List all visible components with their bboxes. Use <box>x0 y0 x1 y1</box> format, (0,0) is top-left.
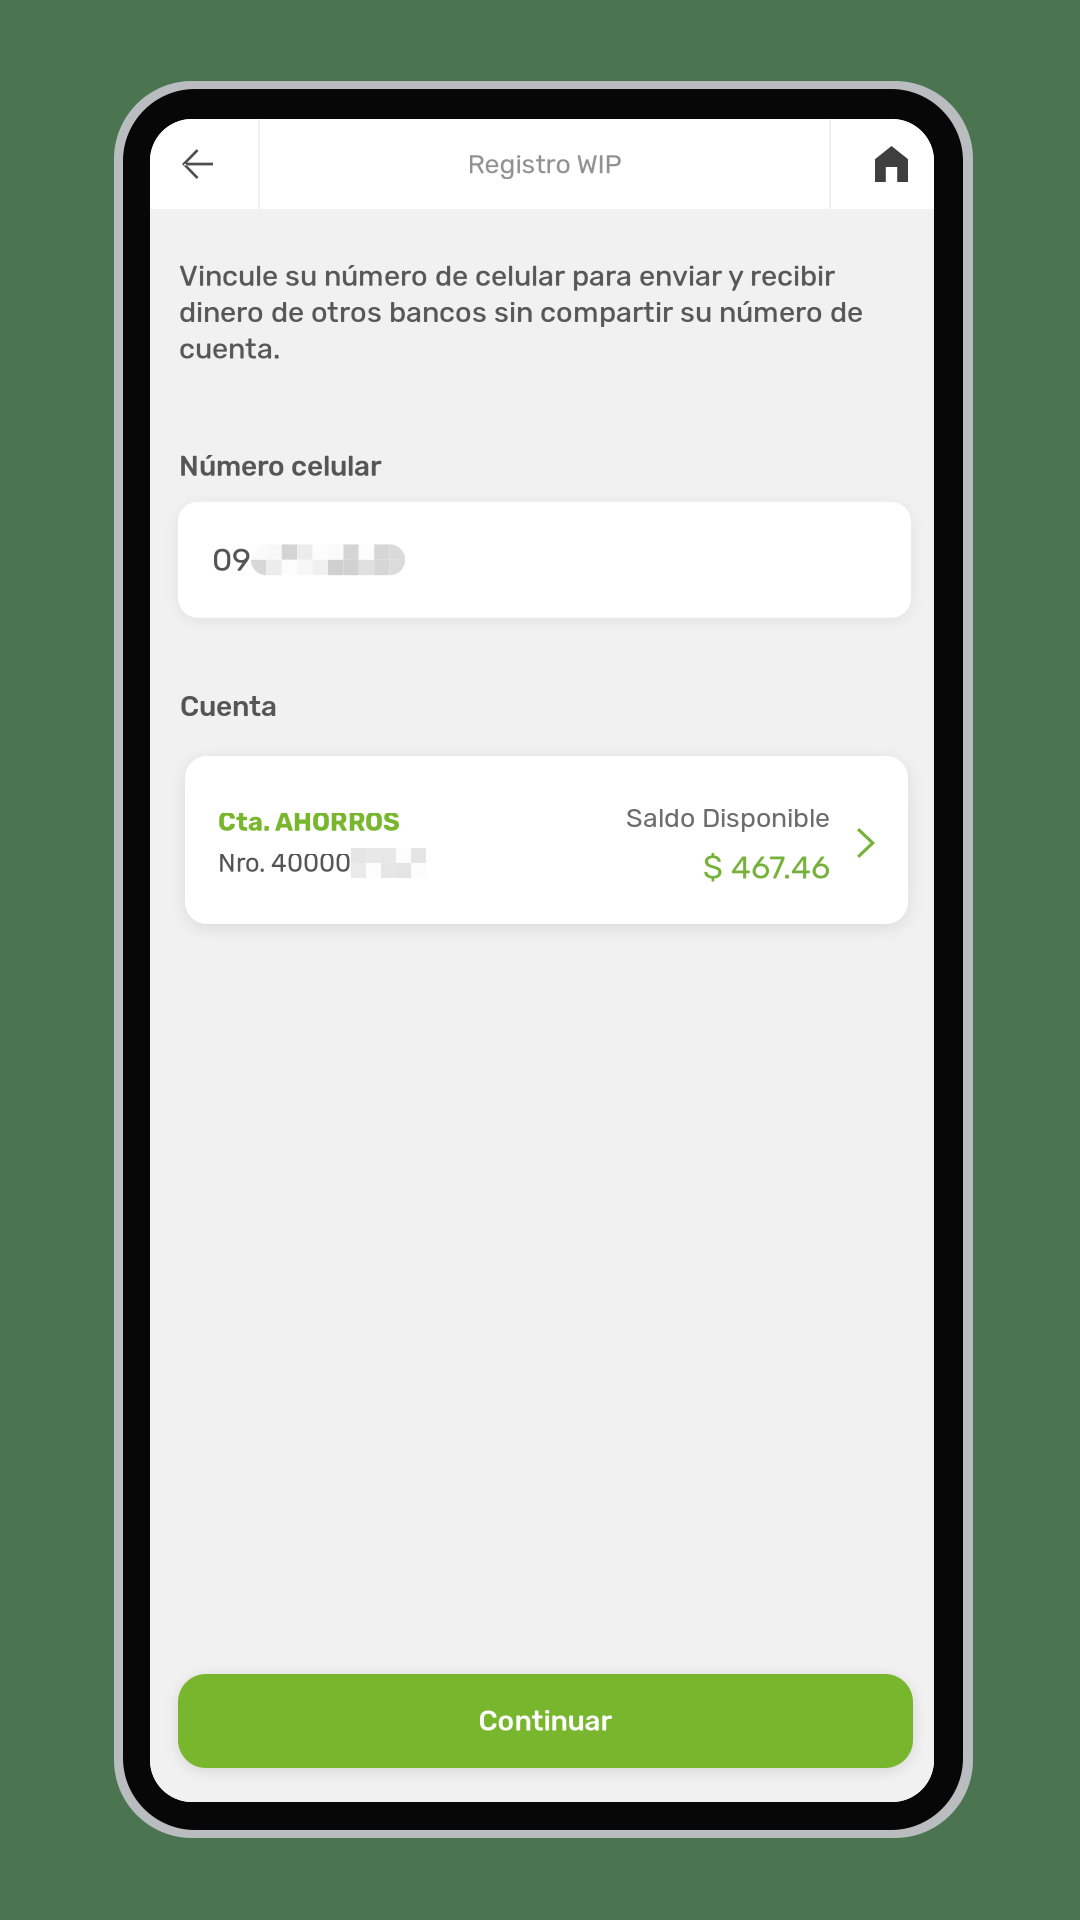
staticText: Cta. AHORROS <box>218 807 400 837</box>
staticText: Saldo Disponible <box>626 802 830 834</box>
staticText: Vincule su número de celular para enviar… <box>179 259 863 366</box>
staticText: Nro. 40000 <box>218 848 351 878</box>
staticText: Número celular <box>179 450 382 483</box>
button[interactable]: Home <box>831 119 934 209</box>
button[interactable]: Back <box>150 119 258 209</box>
button[interactable]: Cta. AHORROS <box>185 756 908 924</box>
staticText: Continuar <box>478 1704 612 1738</box>
staticText: $ 467.46 <box>703 849 830 886</box>
staticText: 09 <box>212 541 251 579</box>
staticText: Cuenta <box>180 690 277 723</box>
staticText: Registro WIP <box>467 148 621 180</box>
button[interactable]: Continuar <box>178 1674 913 1768</box>
